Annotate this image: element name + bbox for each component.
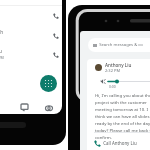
button[interactable]: Search messages & co (88, 38, 150, 52)
staticText: Sarah Yarborough (0, 29, 4, 35)
staticText: Call Anthony Liu (101, 140, 137, 146)
button[interactable]: Voicemail (43, 102, 54, 113)
button[interactable]: Messages (19, 102, 30, 113)
button[interactable]: Sarah Yarborough (0, 27, 62, 46)
staticText: 0:00 (109, 84, 116, 89)
button[interactable]: Anthony Liu (0, 46, 62, 65)
staticText: Search messages & co (97, 42, 143, 48)
button[interactable]: Tim McCullough (0, 7, 62, 26)
staticText: Anthony Liu (105, 62, 132, 68)
staticText: 2:32 PM (105, 68, 121, 73)
staticText: Mobile · 2:32 PM (0, 55, 4, 60)
button[interactable]: Call Anthony Liu (87, 135, 150, 150)
button[interactable]: Dialpad (40, 75, 57, 92)
staticText: Hi, I'm calling you about the project wi… (95, 92, 150, 140)
staticText: Anthony Liu (0, 48, 2, 54)
